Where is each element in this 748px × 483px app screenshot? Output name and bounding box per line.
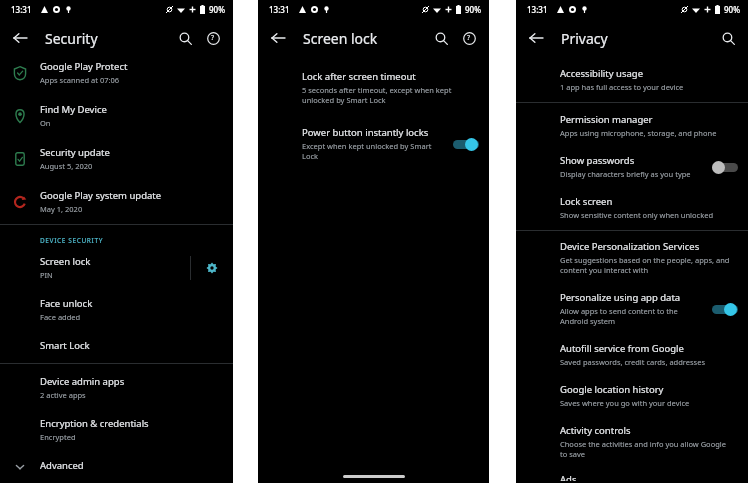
button[interactable]: Activity controls <box>516 416 748 467</box>
staticText: 90% <box>465 4 481 15</box>
button[interactable]: Google Play Protect <box>0 58 233 94</box>
staticText: Security update <box>40 146 110 159</box>
staticText: Choose the activities and info you allow… <box>560 439 726 459</box>
staticText: Smart Lock <box>40 339 90 352</box>
staticText: Show sensitive content only when unlocke… <box>560 210 714 220</box>
button[interactable]: Screen lock <box>0 251 233 289</box>
staticText: Activity controls <box>560 424 631 437</box>
staticText: Autofill service from Google <box>560 342 684 355</box>
staticText: Lock screen <box>560 195 613 208</box>
staticText: Saved passwords, credit cards, addresses <box>560 357 705 367</box>
button[interactable]: Power button instantly locks <box>258 122 489 169</box>
staticText: Advanced <box>40 459 84 472</box>
staticText: 90% <box>724 4 740 15</box>
staticText: Display characters briefly as you type <box>560 169 691 179</box>
staticText: DEVICE SECURITY <box>40 236 104 245</box>
staticText: Screen lock <box>40 255 91 268</box>
staticText: Allow apps to send content to the Androi… <box>560 306 678 326</box>
staticText: Get suggestions based on the people, app… <box>560 255 730 275</box>
button[interactable]: Search <box>171 24 199 52</box>
button[interactable]: Smart Lock <box>0 330 233 363</box>
staticText: Face unlock <box>40 297 93 310</box>
button[interactable] <box>712 160 738 174</box>
button[interactable]: Encryption & credentials <box>0 409 233 450</box>
button[interactable] <box>712 302 738 316</box>
button[interactable] <box>453 137 479 151</box>
staticText: Encrypted <box>40 432 76 442</box>
staticText: Accessibility usage <box>560 67 643 80</box>
button[interactable]: Permission manager <box>516 103 748 146</box>
staticText: 1 app has full access to your device <box>560 82 684 92</box>
button[interactable]: Accessibility usage <box>516 64 748 102</box>
button[interactable]: Back <box>264 24 292 52</box>
button[interactable]: Back <box>522 24 550 52</box>
staticText: Encryption & credentials <box>40 417 149 430</box>
staticText: Personalize using app data <box>560 291 681 304</box>
staticText: Lock after screen timeout <box>302 70 416 83</box>
staticText: Show passwords <box>560 154 635 167</box>
staticText: August 5, 2020 <box>40 161 93 171</box>
button[interactable]: Search <box>427 24 455 52</box>
staticText: Privacy <box>561 29 608 48</box>
staticText: Google Play system update <box>40 189 162 202</box>
staticText: Google Play Protect <box>40 60 128 73</box>
staticText: Saves where you go with your device <box>560 398 690 408</box>
staticText: Device Personalization Services <box>560 240 700 253</box>
staticText: ? <box>211 33 215 43</box>
button[interactable]: Find My Device <box>0 94 233 137</box>
button[interactable]: Google location history <box>516 375 748 416</box>
staticText: Security <box>45 29 98 48</box>
staticText: 2 active apps <box>40 390 86 400</box>
button[interactable]: Help <box>455 24 483 52</box>
button[interactable]: Back <box>6 24 34 52</box>
staticText: PIN <box>40 270 53 280</box>
staticText: 90% <box>209 4 225 15</box>
button[interactable]: Lock screen <box>516 187 748 230</box>
staticText: 13:31 <box>527 4 548 15</box>
button[interactable]: Screen lock settings <box>201 257 223 279</box>
staticText: 13:31 <box>269 4 290 15</box>
staticText: Google location history <box>560 383 664 396</box>
staticText: 5 seconds after timeout, except when kep… <box>302 85 452 105</box>
staticText: Apps scanned at 07:06 <box>40 75 120 85</box>
button[interactable]: Device admin apps <box>0 364 233 409</box>
button[interactable]: Search <box>714 24 742 52</box>
staticText: On <box>40 118 51 128</box>
staticText: Screen lock <box>303 29 378 48</box>
staticText: Device admin apps <box>40 375 125 388</box>
staticText: Power button instantly locks <box>302 126 429 139</box>
button[interactable]: Autofill service from Google <box>516 334 748 375</box>
button[interactable]: Device Personalization Services <box>516 231 748 283</box>
button[interactable]: Help <box>199 24 227 52</box>
staticText: Find My Device <box>40 103 107 116</box>
button[interactable]: Google Play system update <box>0 180 233 224</box>
staticText: Apps using microphone, storage, and phon… <box>560 128 717 138</box>
button[interactable]: Ads <box>516 467 748 483</box>
button[interactable]: Advanced <box>0 450 233 483</box>
button[interactable]: Face unlock <box>0 289 233 330</box>
staticText: ? <box>467 33 471 43</box>
staticText: Face added <box>40 312 81 322</box>
button[interactable]: Security update <box>0 137 233 180</box>
staticText: May 1, 2020 <box>40 204 83 214</box>
button[interactable]: Lock after screen timeout <box>258 66 489 115</box>
button[interactable]: Personalize using app data <box>516 283 748 334</box>
staticText: Except when kept unlocked by Smart Lock <box>302 141 432 161</box>
staticText: Ads <box>560 473 577 481</box>
button[interactable]: Show passwords <box>516 146 748 187</box>
staticText: Permission manager <box>560 113 653 126</box>
staticText: 13:31 <box>11 4 32 15</box>
